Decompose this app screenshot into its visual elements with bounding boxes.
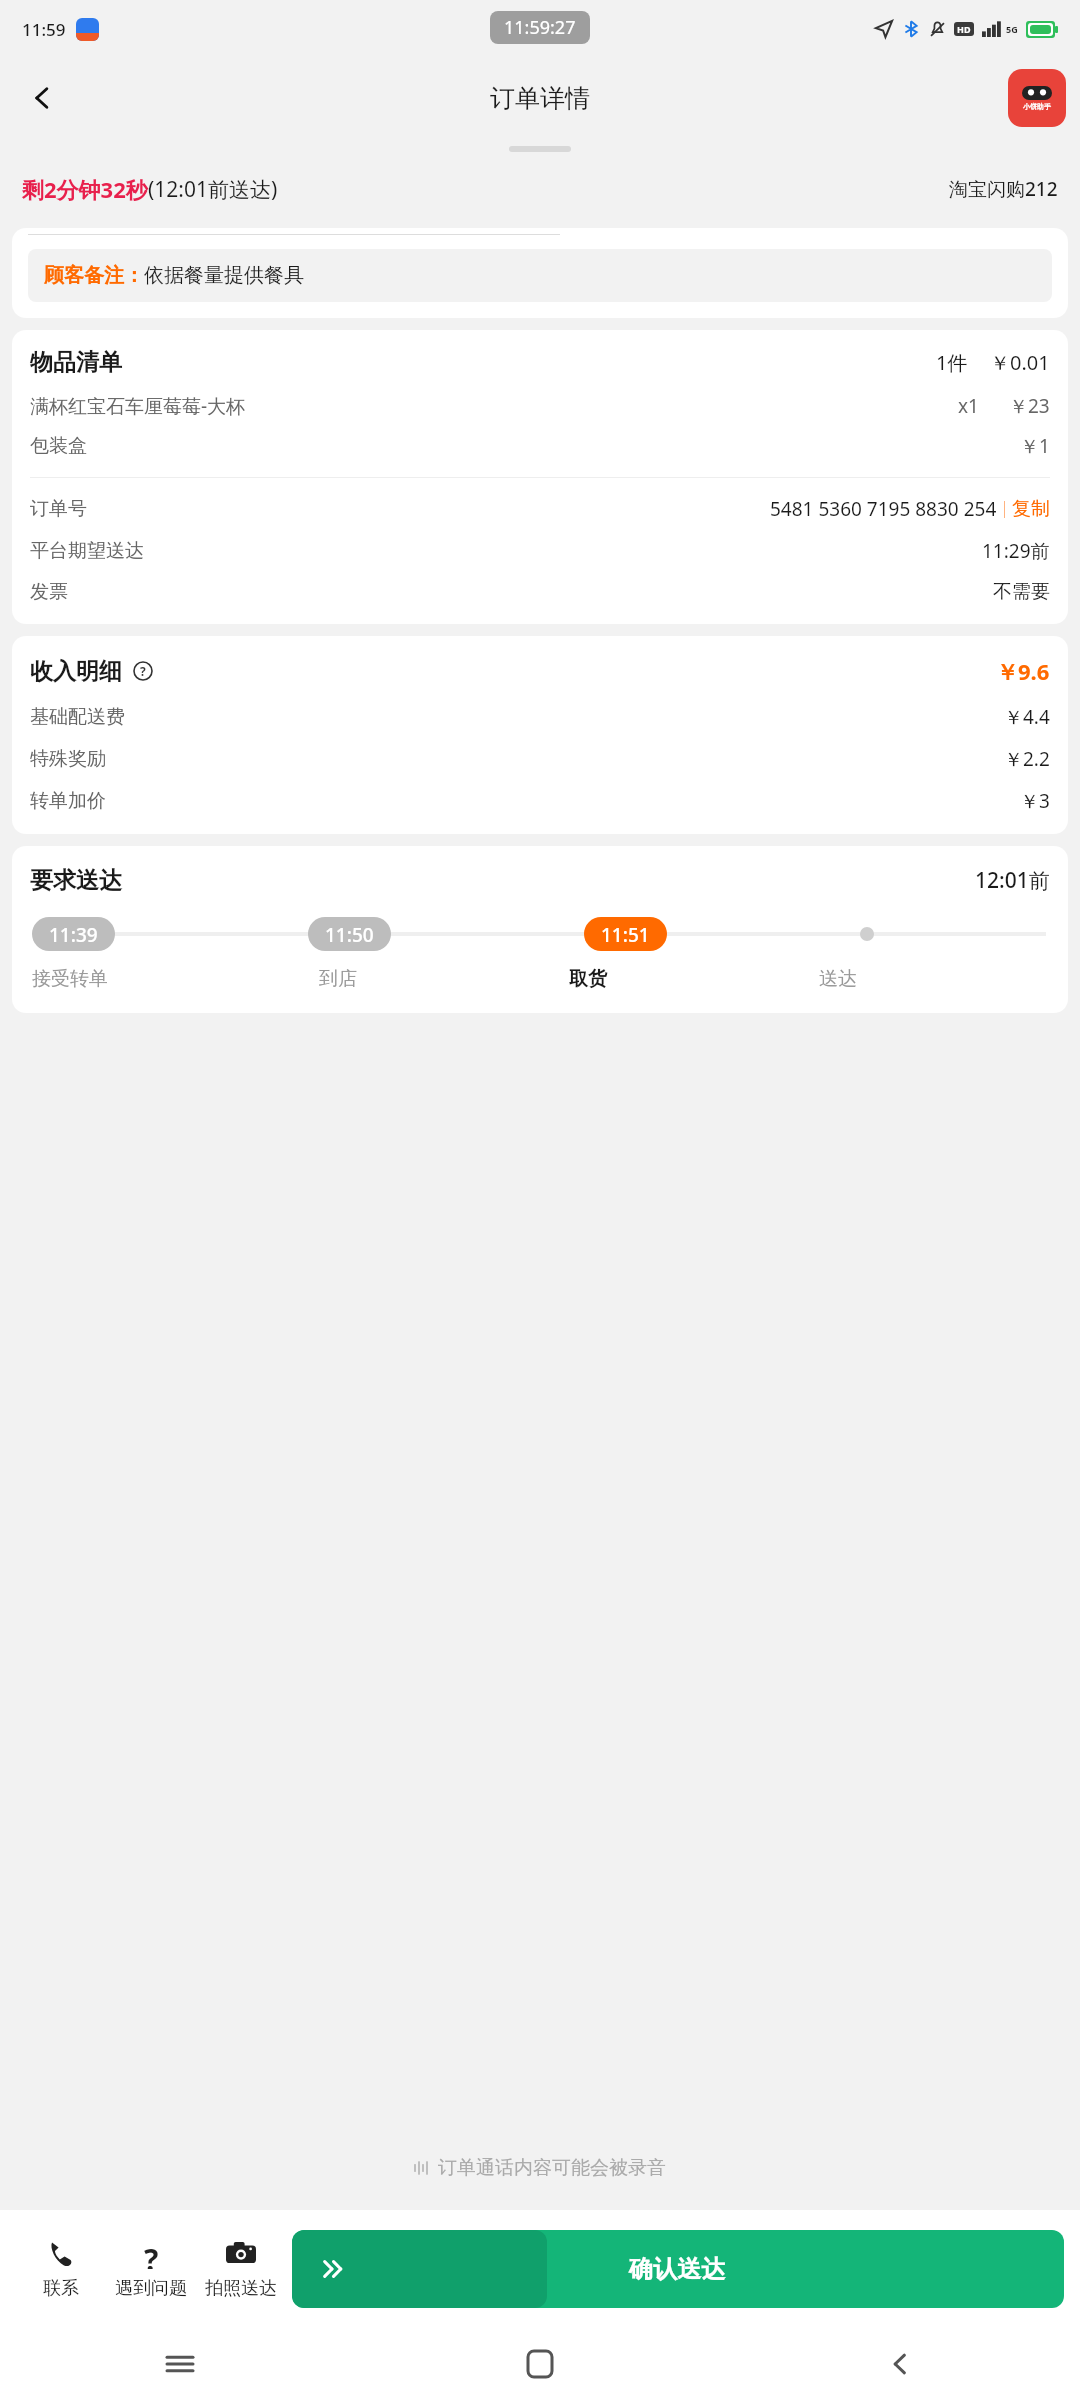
staticText: 包装盒 [30,434,87,458]
staticText: 确认送达 [629,2254,725,2284]
staticText: 订单详情 [490,83,590,114]
staticText: 11:39 [49,922,98,946]
button[interactable]: 复制 [1012,497,1050,521]
staticText: 送达 [819,967,857,991]
button[interactable]: 联系 [16,2210,106,2328]
staticText: ￥2.2 [1004,746,1050,772]
button[interactable]: Home [360,2328,720,2400]
staticText: 5G [1006,23,1018,35]
staticText: 接受转单 [32,967,108,991]
staticText: HD [957,23,971,35]
staticText: x1 [958,393,979,419]
staticText: ￥0.01 [990,349,1050,376]
staticText: 11:59 [22,18,66,41]
staticText: 拍照送达 [205,2277,277,2300]
staticText: ￥23 [1009,393,1050,419]
staticText: 基础配送费 [30,705,125,729]
staticText: 订单通话内容可能会被录音 [438,2156,666,2180]
staticText: 11:29前 [982,538,1050,564]
staticText: 遇到问题 [115,2277,187,2300]
staticText: 剩2分钟32秒 [22,174,148,204]
staticText: 5481 5360 7195 8830 254 [770,496,997,522]
staticText: 1件 [936,349,968,376]
staticText: 联系 [43,2277,79,2300]
staticText: ￥1 [1020,433,1050,459]
staticText: 复制 [1012,497,1050,521]
staticText: 发票 [30,580,68,604]
staticText: 要求送达 [30,866,122,895]
button[interactable]: 说明 [132,660,154,682]
staticText: 收入明细 [30,657,122,686]
staticText: ? [140,663,146,679]
staticText: 平台期望送达 [30,539,144,563]
staticText: 依据餐量提供餐具 [144,263,304,288]
staticText: 取货 [569,967,607,991]
staticText: ￥9.6 [996,656,1050,686]
staticText: 11:51 [601,922,650,946]
staticText: 物品清单 [30,348,122,377]
staticText: 不需要 [993,580,1050,604]
button[interactable]: 确认送达 [292,2230,1064,2308]
staticText: 小饼助手 [1023,102,1051,111]
button[interactable]: 顾客备注： [28,249,1052,302]
staticText: ￥4.4 [1004,704,1050,730]
staticText: 转单加价 [30,789,106,813]
staticText: 满杯红宝石车厘莓莓-大杯 [30,393,246,419]
staticText: (12:01前送达) [148,175,278,204]
staticText: 特殊奖励 [30,747,106,771]
button[interactable]: Back [720,2328,1080,2400]
button[interactable]: 拍照送达 [196,2210,286,2328]
staticText: 淘宝闪购212 [949,176,1058,202]
staticText: 到店 [319,967,357,991]
button[interactable]: Recents [0,2328,360,2400]
button[interactable]: 小饼助手 [1008,69,1066,127]
button[interactable]: Back [12,68,72,128]
staticText: 订单号 [30,497,87,521]
staticText: 顾客备注： [44,263,144,288]
staticText: 12:01前 [975,866,1050,895]
staticText: 11:59:27 [504,15,576,40]
button[interactable]: ? [106,2210,196,2328]
staticText: ? [144,2239,159,2269]
staticText: 11:50 [325,922,374,946]
staticText: ￥3 [1020,788,1050,814]
